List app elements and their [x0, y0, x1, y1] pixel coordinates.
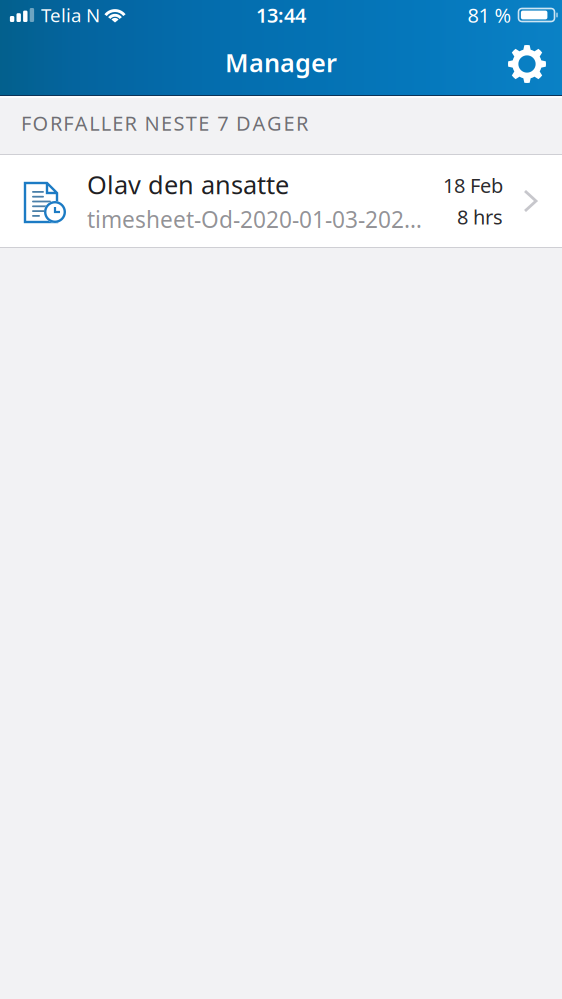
staticText: Telia N: [41, 3, 100, 27]
staticText: L: [101, 110, 111, 136]
staticText: F: [63, 110, 73, 136]
staticText: A: [75, 110, 88, 136]
staticText: E: [112, 110, 123, 136]
staticText: Olav den ansatte: [87, 168, 289, 201]
staticText: E: [198, 110, 209, 136]
staticText: Manager: [225, 46, 337, 79]
staticText: A: [252, 110, 265, 136]
button[interactable]: Settings: [498, 34, 556, 91]
staticText: 7: [217, 110, 228, 136]
staticText: R: [296, 110, 308, 136]
staticText: 18 Feb: [443, 172, 503, 198]
staticText: O: [32, 110, 48, 136]
staticText: G: [267, 110, 282, 136]
staticText: 13:44: [256, 2, 306, 28]
staticText: L: [89, 110, 99, 136]
staticText: 81 %: [467, 2, 511, 28]
staticText: 8 hrs: [457, 203, 503, 230]
staticText: timesheet-Od-2020-01-03-202…: [87, 204, 422, 234]
staticText: E: [161, 110, 172, 136]
staticText: S: [173, 110, 184, 136]
button[interactable]: Olav den ansatte: [0, 154, 562, 248]
staticText: F: [21, 110, 31, 136]
staticText: T: [186, 110, 197, 136]
staticText: R: [50, 110, 62, 136]
staticText: D: [236, 110, 251, 136]
staticText: E: [283, 110, 294, 136]
staticText: R: [125, 110, 137, 136]
staticText: N: [144, 110, 159, 136]
